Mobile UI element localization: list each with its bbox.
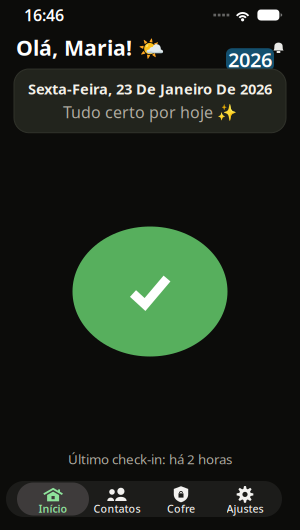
- staticText: Início: [38, 501, 67, 516]
- staticText: Cofre: [167, 501, 195, 516]
- staticText: Olá, Maria! 🌤️: [16, 33, 165, 61]
- button[interactable]: Check-in: [72, 226, 227, 356]
- staticText: Ajustes: [226, 501, 263, 516]
- staticText: Sexta-Feira, 23 De Janeiro De 2026: [28, 79, 272, 98]
- staticText: Contatos: [93, 501, 140, 516]
- staticText: Último check-in: há 2 horas: [68, 450, 232, 468]
- button[interactable]: Início: [21, 482, 85, 515]
- staticText: 2026: [228, 46, 272, 73]
- button[interactable]: Notificações: [226, 28, 285, 71]
- button[interactable]: Contatos: [85, 482, 149, 515]
- button[interactable]: Cofre: [149, 482, 213, 515]
- staticText: Tudo certo por hoje ✨: [63, 101, 237, 123]
- button[interactable]: Ajustes: [213, 482, 277, 515]
- staticText: 16:46: [24, 4, 64, 26]
